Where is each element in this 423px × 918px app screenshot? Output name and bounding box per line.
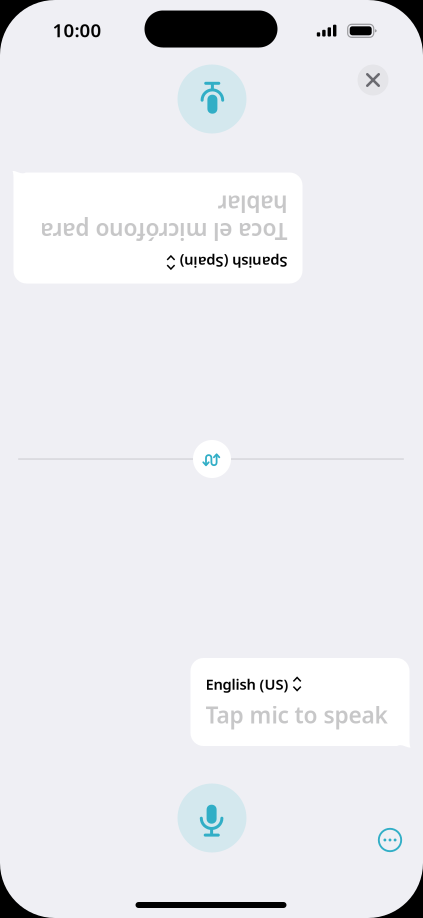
button[interactable]: More options: [378, 828, 401, 851]
button[interactable]: Swap languages: [193, 440, 231, 478]
staticText: 10:00: [52, 18, 101, 42]
button[interactable]: Spanish (Spain): [13, 172, 302, 283]
staticText: Toca el micrófono para: [28, 209, 275, 239]
button[interactable]: Close: [357, 64, 388, 95]
button[interactable]: Microphone: [177, 783, 246, 852]
button[interactable]: English (US): [190, 658, 409, 746]
button[interactable]: Microphone for Spanish: [177, 64, 246, 133]
staticText: Tap mic to speak: [205, 700, 387, 730]
staticText: English (US): [205, 674, 288, 694]
